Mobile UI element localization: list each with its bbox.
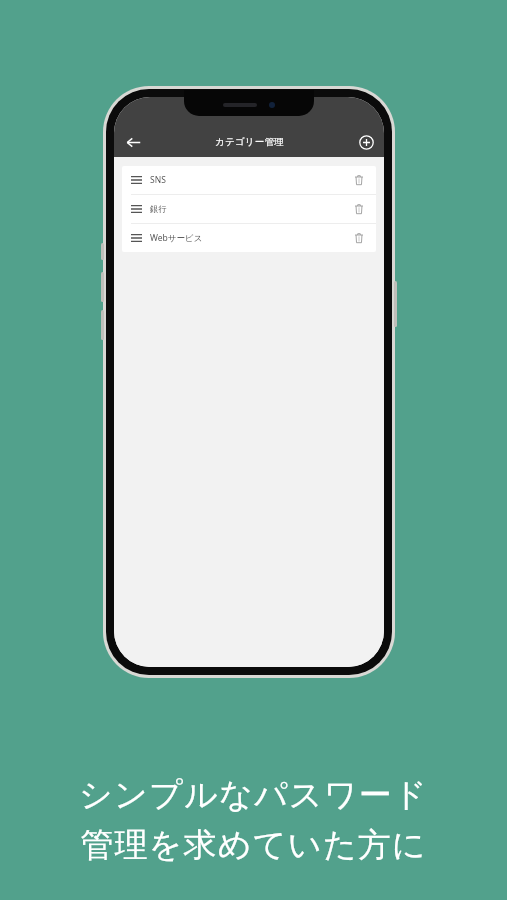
staticText: 管理を求めていた方に — [80, 824, 427, 866]
button[interactable]: Delete Webサービス — [351, 230, 367, 246]
button[interactable]: Delete 銀行 — [351, 201, 367, 217]
button[interactable]: Add category — [354, 130, 378, 154]
button[interactable]: Webサービス — [122, 224, 376, 252]
staticText: 銀行 — [150, 204, 167, 215]
button[interactable]: Back — [120, 129, 146, 155]
button[interactable]: 銀行 — [122, 195, 376, 223]
staticText: SNS — [150, 174, 166, 186]
staticText: Webサービス — [150, 232, 203, 244]
button[interactable]: Delete SNS — [351, 172, 367, 188]
staticText: カテゴリー管理 — [215, 136, 284, 148]
staticText: シンプルなパスワード — [79, 774, 428, 816]
button[interactable]: SNS — [122, 166, 376, 194]
